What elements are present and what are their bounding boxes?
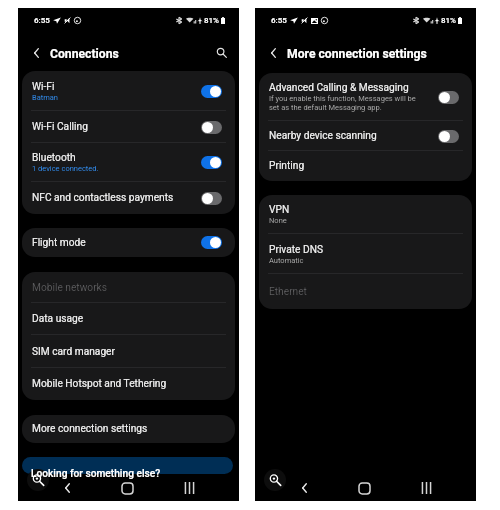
staticText: Mobile networks: [32, 282, 108, 294]
button[interactable]: Turn off: [201, 156, 222, 169]
staticText: 1 device connected.: [32, 164, 99, 173]
button[interactable]: SIM card manager: [22, 335, 235, 368]
button[interactable]: Wi-Fi: [22, 71, 235, 111]
staticText: Wi-Fi: [32, 81, 55, 93]
staticText: Connections: [50, 47, 119, 61]
button[interactable]: Flight mode: [22, 228, 235, 257]
staticText: If you enable this function, Messages wi…: [269, 94, 416, 103]
button[interactable]: VPN: [259, 195, 472, 234]
button[interactable]: Back: [262, 41, 285, 64]
button[interactable]: Turn on: [201, 192, 222, 205]
button[interactable]: Mobile networks: [22, 272, 235, 303]
button[interactable]: Home: [353, 477, 375, 499]
button[interactable]: Mobile Hotspot and Tethering: [22, 368, 235, 400]
staticText: 6:55: [271, 16, 287, 25]
staticText: NFC and contactless payments: [32, 192, 174, 204]
staticText: Flight mode: [32, 237, 86, 249]
button[interactable]: Turn off: [201, 85, 222, 98]
staticText: Printing: [269, 160, 305, 172]
button[interactable]: [22, 457, 233, 474]
button[interactable]: Back: [25, 41, 48, 64]
staticText: Wi-Fi Calling: [32, 121, 88, 133]
staticText: 81%: [204, 16, 219, 25]
staticText: Private DNS: [269, 244, 324, 256]
button[interactable]: Recent apps: [178, 477, 200, 499]
button[interactable]: Back: [293, 477, 315, 499]
button[interactable]: Data usage: [22, 303, 235, 335]
staticText: 81%: [441, 16, 456, 25]
button[interactable]: Bluetooth: [22, 143, 235, 182]
button[interactable]: Turn off: [201, 236, 222, 249]
button[interactable]: Search: [27, 469, 49, 491]
button[interactable]: Ethernet: [259, 274, 472, 309]
button[interactable]: NFC and contactless payments: [22, 182, 235, 214]
staticText: Data usage: [32, 313, 84, 325]
staticText: None: [269, 216, 287, 225]
button[interactable]: Printing: [259, 151, 472, 181]
staticText: Batman: [32, 93, 59, 102]
staticText: Nearby device scanning: [269, 130, 377, 142]
staticText: set as the default Messaging app.: [269, 103, 382, 112]
button[interactable]: Private DNS: [259, 234, 472, 274]
staticText: More connection settings: [32, 423, 148, 435]
staticText: SIM card manager: [32, 346, 115, 358]
staticText: 6:55: [34, 16, 50, 25]
button[interactable]: Nearby device scanning: [259, 121, 472, 151]
staticText: More connection settings: [287, 47, 427, 61]
button[interactable]: Turn on: [438, 91, 459, 104]
staticText: Advanced Calling & Messaging: [269, 82, 409, 94]
button[interactable]: Recent apps: [415, 477, 437, 499]
staticText: Automatic: [269, 256, 304, 265]
button[interactable]: Search: [264, 469, 286, 491]
staticText: Ethernet: [269, 286, 307, 298]
button[interactable]: Turn on: [438, 130, 459, 143]
button[interactable]: Search: [210, 41, 233, 64]
button[interactable]: More connection settings: [22, 415, 235, 443]
button[interactable]: Advanced Calling & Messaging: [259, 73, 472, 121]
button[interactable]: Turn on: [201, 121, 222, 134]
staticText: VPN: [269, 204, 290, 216]
button[interactable]: Wi-Fi Calling: [22, 111, 235, 143]
staticText: Mobile Hotspot and Tethering: [32, 378, 167, 390]
button[interactable]: Back: [56, 477, 78, 499]
staticText: Looking for something else?: [31, 468, 161, 480]
button[interactable]: Home: [116, 477, 138, 499]
staticText: Bluetooth: [32, 152, 76, 164]
